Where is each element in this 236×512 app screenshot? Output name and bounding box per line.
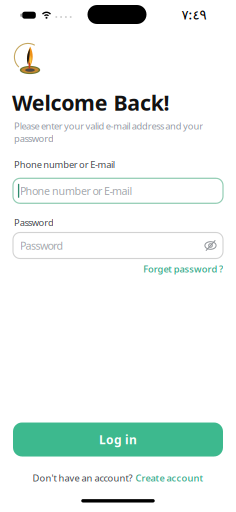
staticText: ٧:٤٩ (181, 5, 206, 23)
button[interactable]: Forget password ? (143, 263, 223, 275)
button[interactable]: Show password (202, 237, 218, 253)
staticText: Please enter your valid e-mail address a… (14, 120, 203, 132)
staticText: Create account (135, 472, 203, 484)
staticText: Phone number or E-mail (14, 158, 115, 171)
button[interactable]: Create account (135, 472, 203, 484)
button[interactable]: Log in (13, 422, 223, 456)
staticText: Password (14, 216, 54, 229)
staticText: Phone number or E-mail (20, 184, 132, 198)
staticText: password (14, 132, 54, 145)
staticText: Log in (99, 431, 137, 447)
staticText: Don't have an account? (32, 472, 132, 484)
staticText: Forget password ? (143, 263, 223, 275)
staticText: Welcome Back! (12, 88, 170, 117)
staticText: Password (20, 238, 63, 253)
